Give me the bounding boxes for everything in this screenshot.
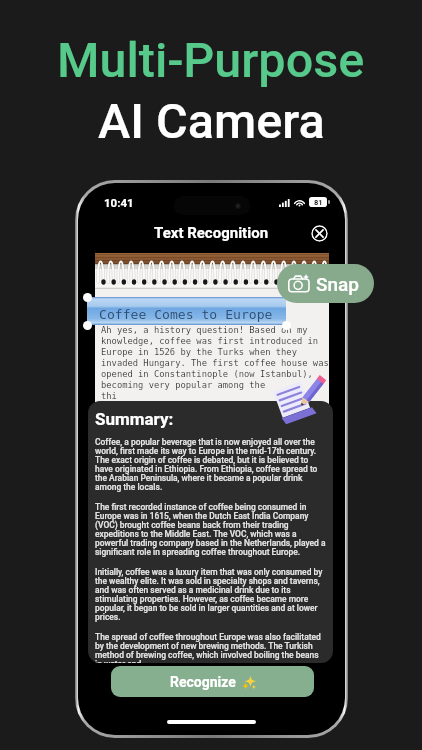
staticText: Multi-Purpose	[57, 32, 365, 89]
staticText: The first recorded instance of coffee be…	[95, 502, 326, 558]
staticText: 10:41	[104, 196, 134, 209]
staticText: Initially, coffee was a luxury item that…	[95, 567, 326, 623]
staticText: Text Recognition	[154, 224, 269, 242]
button[interactable]: Close	[311, 225, 328, 242]
staticText: Snap	[316, 273, 360, 295]
staticText: AI Camera	[98, 93, 325, 150]
staticText: Summary:	[95, 409, 174, 429]
button[interactable]: Snap	[277, 264, 374, 303]
staticText: The spread of coffee throughout Europe w…	[95, 632, 326, 663]
staticText: Ah yes, a history question! Based on my …	[101, 325, 329, 401]
staticText: Coffee Comes to Europe	[99, 307, 273, 322]
staticText: Recognize	[170, 674, 236, 690]
staticText: 81	[314, 198, 323, 207]
button[interactable]: Recognize	[111, 666, 314, 697]
staticText: Coffee, a popular beverage that is now e…	[95, 437, 326, 493]
